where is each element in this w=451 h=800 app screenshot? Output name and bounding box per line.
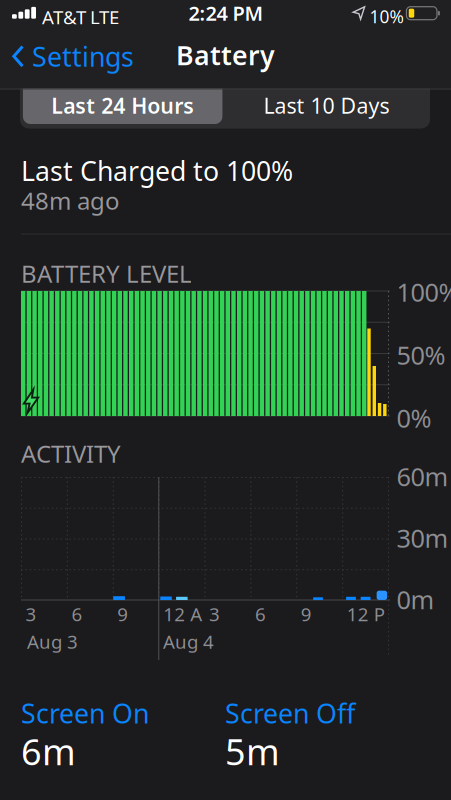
staticText: 6m <box>21 727 76 775</box>
staticText: 60m <box>396 459 448 493</box>
staticText: BATTERY LEVEL <box>21 257 192 289</box>
staticText: 9 <box>301 601 312 626</box>
staticText: 0m <box>396 582 434 616</box>
button[interactable]: Back to Settings <box>12 39 134 74</box>
staticText: 12 P <box>347 601 385 626</box>
staticText: 3 <box>209 601 220 626</box>
staticText: 5m <box>225 727 280 775</box>
staticText: 10% <box>369 5 403 28</box>
button[interactable]: Last 10 Days <box>226 81 426 124</box>
staticText: 0% <box>396 401 431 435</box>
button[interactable]: Last 24 Hours <box>23 81 222 124</box>
staticText: 6 <box>71 601 82 626</box>
staticText: Last 10 Days <box>263 91 389 120</box>
staticText: 2:24 PM <box>188 0 263 26</box>
staticText: LTE <box>90 4 119 29</box>
staticText: 100% <box>396 275 451 309</box>
staticText: 48m ago <box>21 184 120 216</box>
staticText: AT&T <box>42 4 86 29</box>
staticText: 9 <box>117 601 128 626</box>
staticText: Battery <box>176 37 275 73</box>
staticText: Screen On <box>21 695 149 731</box>
staticText: 30m <box>396 521 448 555</box>
staticText: Aug 4 <box>163 629 214 654</box>
staticText: 3 <box>25 601 36 626</box>
staticText: Settings <box>32 39 134 74</box>
staticText: Aug 3 <box>27 629 78 654</box>
staticText: Screen Off <box>225 695 355 731</box>
staticText: 12 A <box>163 601 202 626</box>
staticText: 50% <box>396 338 445 372</box>
staticText: Last 24 Hours <box>51 91 194 120</box>
staticText: Last Charged to 100% <box>21 153 293 188</box>
staticText: 6 <box>255 601 266 626</box>
staticText: ACTIVITY <box>21 437 121 469</box>
